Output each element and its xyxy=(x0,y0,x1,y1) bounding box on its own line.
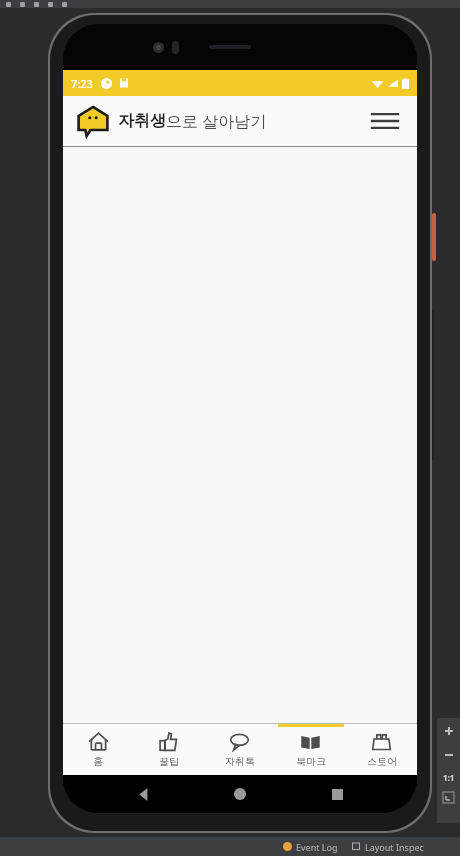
button[interactable]: 스토어 xyxy=(346,724,417,775)
staticText: 자취생 xyxy=(118,111,166,131)
button[interactable]: Home xyxy=(223,777,257,811)
staticText: Event Log xyxy=(296,841,338,853)
button[interactable]: 자취톡 xyxy=(204,724,275,775)
staticText: 자취톡 xyxy=(225,755,255,768)
staticText: Layout Inspec xyxy=(365,841,424,853)
button[interactable]: Recents xyxy=(320,777,354,811)
staticText: 스토어 xyxy=(367,755,397,768)
button[interactable]: 북마크 xyxy=(275,724,346,775)
staticText: 북마크 xyxy=(296,755,326,768)
button[interactable]: 홈 xyxy=(63,724,133,775)
staticText: 7:23 xyxy=(71,76,93,91)
button[interactable]: Menu xyxy=(367,103,403,139)
staticText: 으로 살아남기 xyxy=(166,110,267,132)
button[interactable]: Back xyxy=(126,777,160,811)
staticText: 꿀팁 xyxy=(159,755,179,768)
staticText: 1:1 xyxy=(443,772,455,783)
staticText: 홈 xyxy=(93,755,103,768)
button[interactable]: 꿀팁 xyxy=(133,724,204,775)
